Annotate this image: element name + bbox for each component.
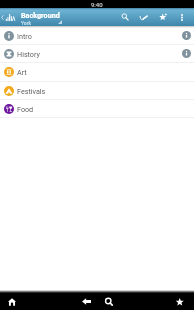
button[interactable]: Food <box>0 100 194 118</box>
staticText: Festivals <box>17 87 46 95</box>
staticText: Art <box>17 68 27 76</box>
button[interactable]: Search <box>100 293 117 310</box>
button[interactable]: Back <box>78 293 95 310</box>
button[interactable]: Favorites <box>172 294 188 310</box>
button[interactable]: Info <box>178 27 194 44</box>
button[interactable]: Info <box>178 45 194 62</box>
staticText: York <box>21 20 31 26</box>
staticText: Intro <box>17 32 32 40</box>
button[interactable]: More options <box>172 8 194 26</box>
button[interactable]: Art <box>0 63 194 82</box>
button[interactable]: History <box>0 45 194 63</box>
staticText: 9:40 <box>91 1 103 8</box>
staticText: History <box>17 50 40 58</box>
button[interactable]: Intro <box>0 27 194 45</box>
button[interactable]: Search <box>115 8 134 26</box>
button[interactable]: Background <box>0 8 194 26</box>
button[interactable]: Home <box>4 294 20 310</box>
staticText: Background <box>21 11 60 19</box>
button[interactable]: Edit <box>134 8 153 26</box>
staticText: Food <box>17 105 34 113</box>
button[interactable]: Add to favourites <box>153 8 172 26</box>
button[interactable]: Festivals <box>0 82 194 100</box>
